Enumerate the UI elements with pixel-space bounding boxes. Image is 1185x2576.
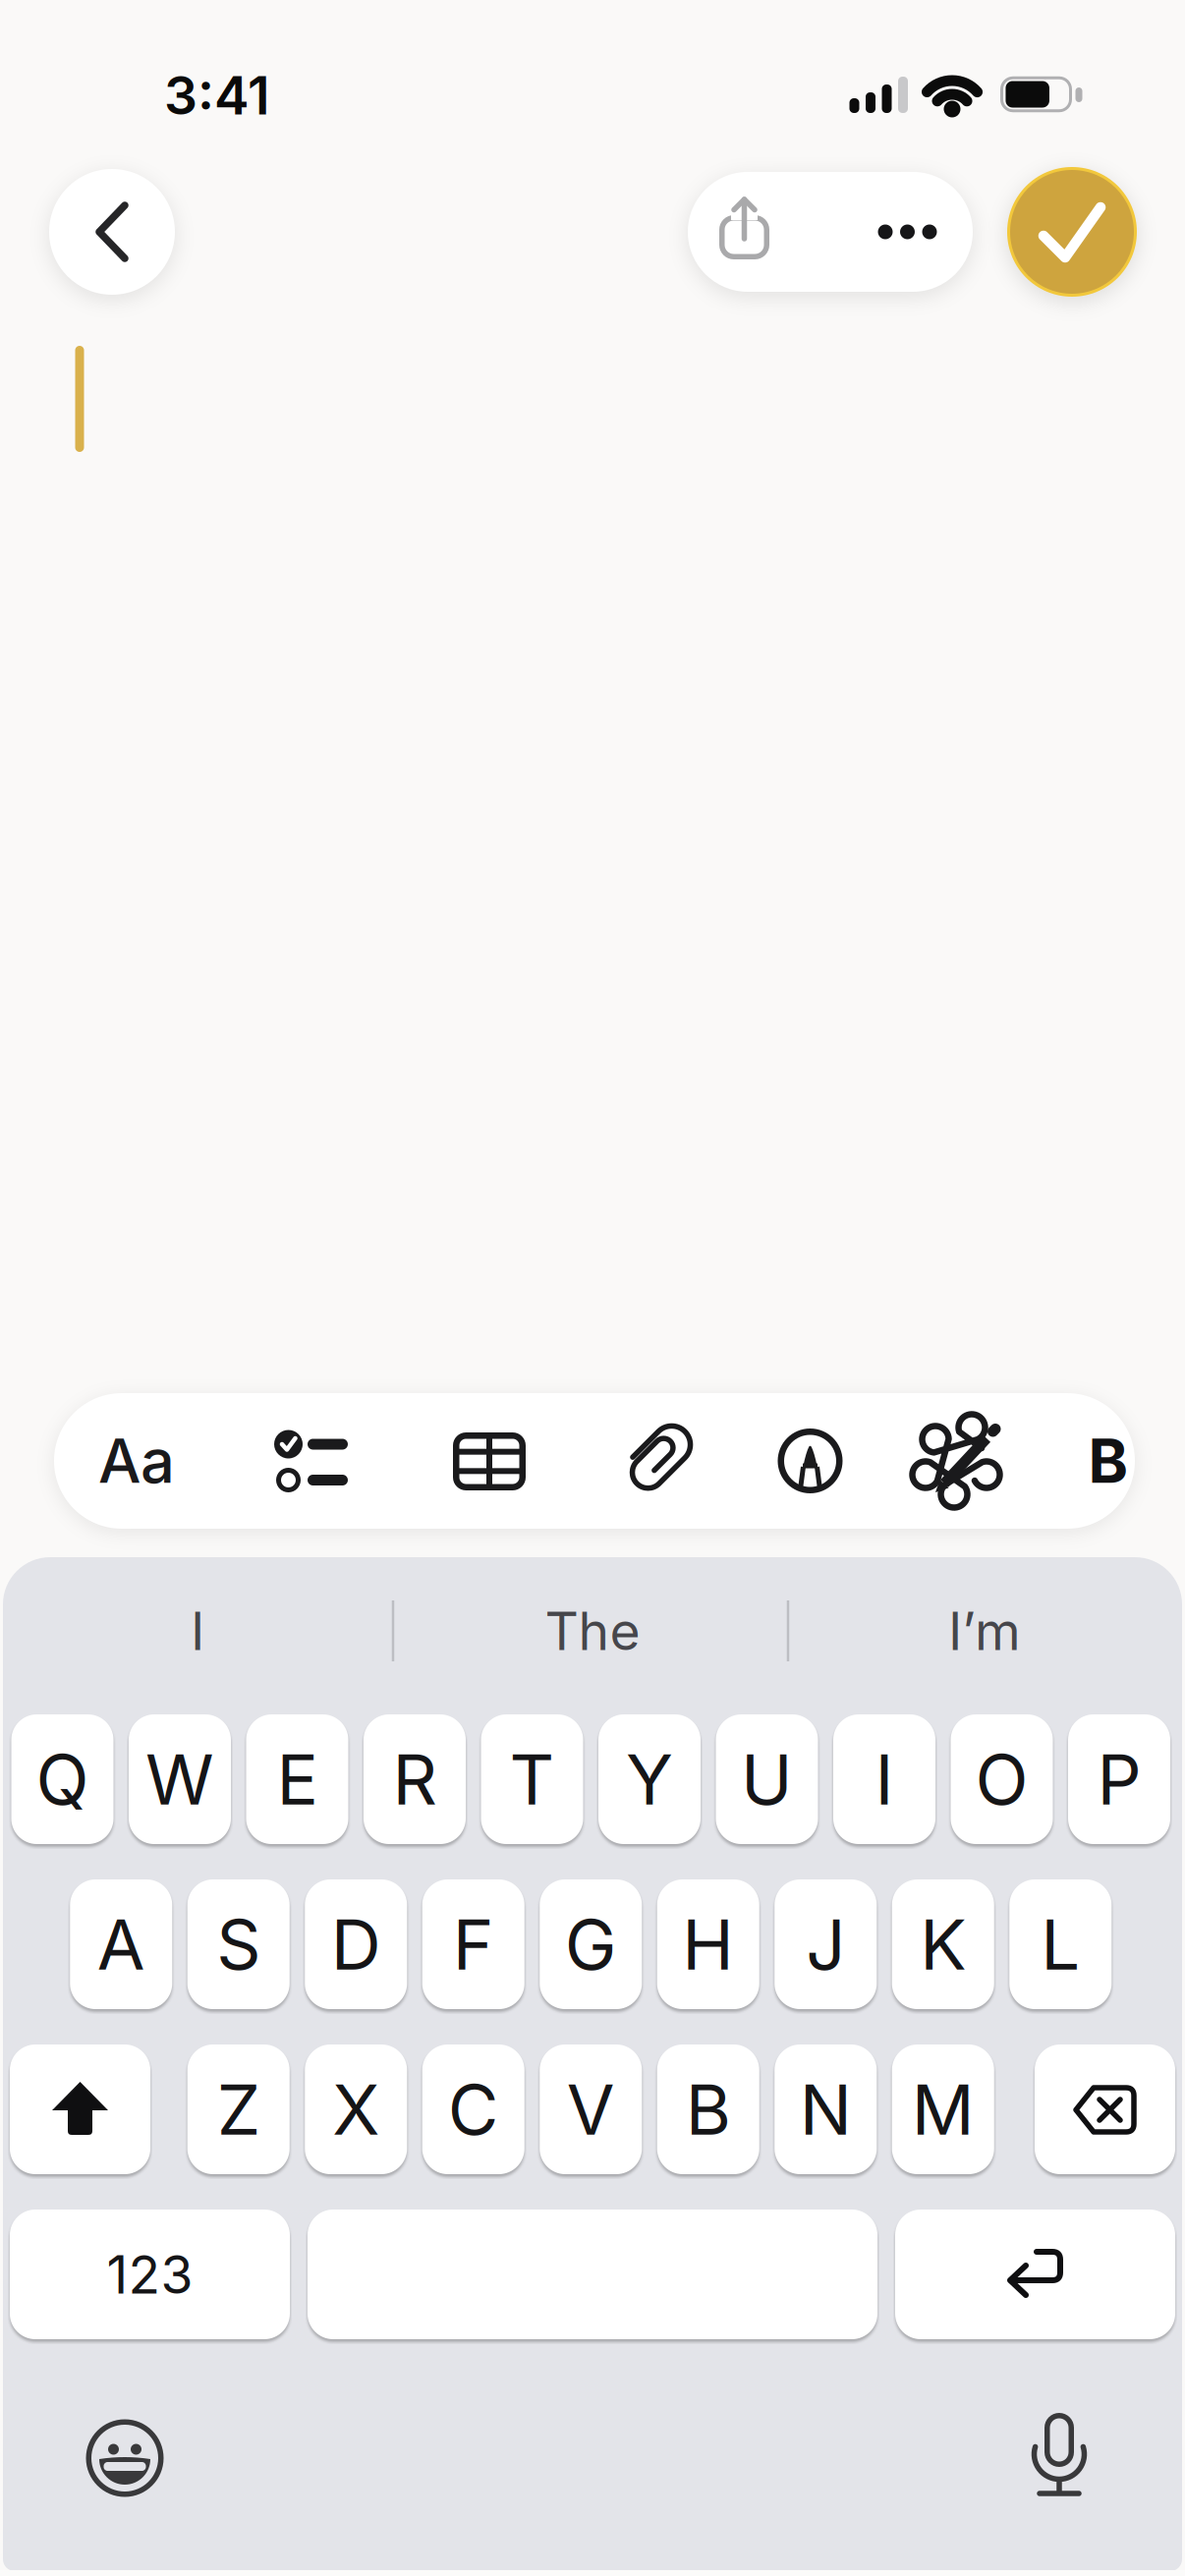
staticText: P [1097,1737,1141,1821]
button[interactable]: B [657,2044,759,2174]
button[interactable] [263,1412,361,1511]
button[interactable]: O [951,1714,1053,1844]
staticText: T [509,1737,555,1821]
staticText: B [686,2067,731,2151]
button[interactable] [911,1411,1009,1509]
button[interactable]: I’m [793,1582,1176,1680]
button[interactable]: S [187,1879,290,2009]
button[interactable] [688,172,830,292]
button[interactable]: D [305,1879,407,2009]
staticText: N [800,2067,852,2151]
button[interactable]: A [70,1879,172,2009]
button[interactable]: F [422,1879,525,2009]
button[interactable]: V [540,2044,642,2174]
button[interactable]: H [657,1879,759,2009]
button[interactable] [1035,2044,1175,2174]
button[interactable] [440,1412,538,1511]
staticText: L [1041,1902,1080,1986]
staticText: S [216,1902,261,1986]
button[interactable] [761,1412,859,1510]
staticText: Aa [98,1424,175,1497]
staticText: 123 [107,2243,193,2306]
staticText: H [682,1902,734,1986]
button[interactable]: N [774,2044,877,2174]
staticText: E [277,1737,318,1821]
staticText: J [806,1902,845,1986]
button[interactable]: 123 [10,2210,290,2339]
staticText: I [875,1737,894,1821]
staticText: F [453,1902,494,1986]
button[interactable] [895,2210,1175,2339]
button[interactable]: C [422,2044,525,2174]
button[interactable]: Z [187,2044,290,2174]
staticText: I’m [948,1599,1021,1663]
button[interactable]: Aa [73,1393,200,1529]
staticText: C [448,2067,499,2151]
button[interactable]: T [481,1714,583,1844]
staticText: Y [626,1737,673,1821]
staticText: O [975,1737,1028,1821]
staticText: R [393,1737,437,1821]
button[interactable]: E [246,1714,348,1844]
button[interactable]: W [129,1714,231,1844]
staticText: D [331,1902,381,1986]
button[interactable] [830,172,973,292]
staticText: V [567,2067,615,2151]
button[interactable]: G [540,1879,642,2009]
staticText: U [741,1737,793,1821]
staticText: B [1088,1424,1129,1497]
staticText: 3:41 [164,64,270,127]
button[interactable]: L [1009,1879,1112,2009]
button[interactable]: K [892,1879,994,2009]
button[interactable]: Y [598,1714,701,1844]
button[interactable] [1007,167,1137,297]
button[interactable]: The [401,1582,784,1680]
button[interactable]: P [1068,1714,1170,1844]
button[interactable]: M [892,2044,994,2174]
button[interactable]: I [833,1714,935,1844]
button[interactable]: B [1074,1393,1143,1529]
button[interactable] [71,2404,179,2512]
staticText: X [332,2067,379,2151]
button[interactable]: R [364,1714,466,1844]
button[interactable]: U [716,1714,818,1844]
button[interactable]: Q [11,1714,113,1844]
staticText: G [565,1902,617,1986]
button[interactable] [308,2210,877,2339]
staticText: Z [217,2067,260,2151]
button[interactable] [49,169,175,295]
staticText: K [920,1902,966,1986]
staticText: I [191,1599,204,1663]
staticText: A [97,1902,145,1986]
button[interactable]: I [6,1582,389,1680]
staticText: Q [36,1737,89,1821]
staticText: M [912,2067,975,2151]
staticText: W [145,1737,214,1821]
button[interactable] [1005,2399,1113,2507]
button[interactable]: X [305,2044,407,2174]
button[interactable]: J [774,1879,877,2009]
staticText: The [545,1599,640,1663]
button[interactable] [10,2044,150,2174]
button[interactable] [629,1418,684,1502]
